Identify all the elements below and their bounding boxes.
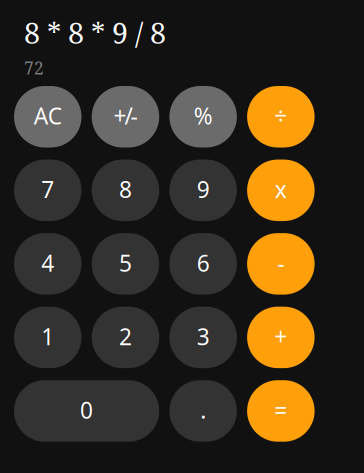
staticText: 9: [197, 174, 210, 204]
staticText: .: [200, 395, 206, 425]
button[interactable]: 8: [92, 160, 159, 221]
button[interactable]: 0: [14, 380, 159, 442]
staticText: 3: [197, 321, 210, 351]
staticText: 2: [119, 321, 132, 351]
button[interactable]: 5: [92, 233, 159, 295]
staticText: x: [275, 174, 287, 204]
button[interactable]: +: [92, 86, 159, 147]
button[interactable]: 2: [92, 307, 159, 368]
staticText: =: [274, 395, 287, 425]
button[interactable]: 4: [14, 233, 81, 295]
button[interactable]: x: [247, 160, 315, 221]
staticText: -: [130, 101, 137, 131]
button[interactable]: =: [247, 380, 315, 442]
staticText: 4: [41, 248, 54, 278]
button[interactable]: 7: [14, 160, 81, 221]
button[interactable]: 3: [169, 307, 237, 368]
button[interactable]: 6: [169, 233, 237, 295]
staticText: +: [274, 321, 287, 351]
staticText: 5: [119, 248, 132, 278]
staticText: -: [277, 248, 284, 278]
staticText: 7: [41, 174, 54, 204]
staticText: 8 * 8 * 9 / 8: [24, 13, 166, 52]
staticText: 72: [24, 56, 44, 80]
staticText: 0: [80, 395, 93, 425]
staticText: ÷: [274, 101, 287, 131]
button[interactable]: %: [169, 86, 237, 147]
staticText: AC: [34, 101, 62, 131]
staticText: 8: [119, 174, 132, 204]
staticText: 1: [41, 321, 54, 351]
staticText: 6: [197, 248, 210, 278]
staticText: %: [194, 101, 213, 131]
button[interactable]: 1: [14, 307, 81, 368]
button[interactable]: -: [247, 233, 315, 295]
staticText: /: [124, 101, 132, 131]
button[interactable]: ÷: [247, 86, 315, 147]
button[interactable]: .: [169, 380, 237, 442]
button[interactable]: 9: [169, 160, 237, 221]
button[interactable]: AC: [14, 86, 81, 147]
button[interactable]: +: [247, 307, 315, 368]
staticText: +: [113, 101, 126, 131]
